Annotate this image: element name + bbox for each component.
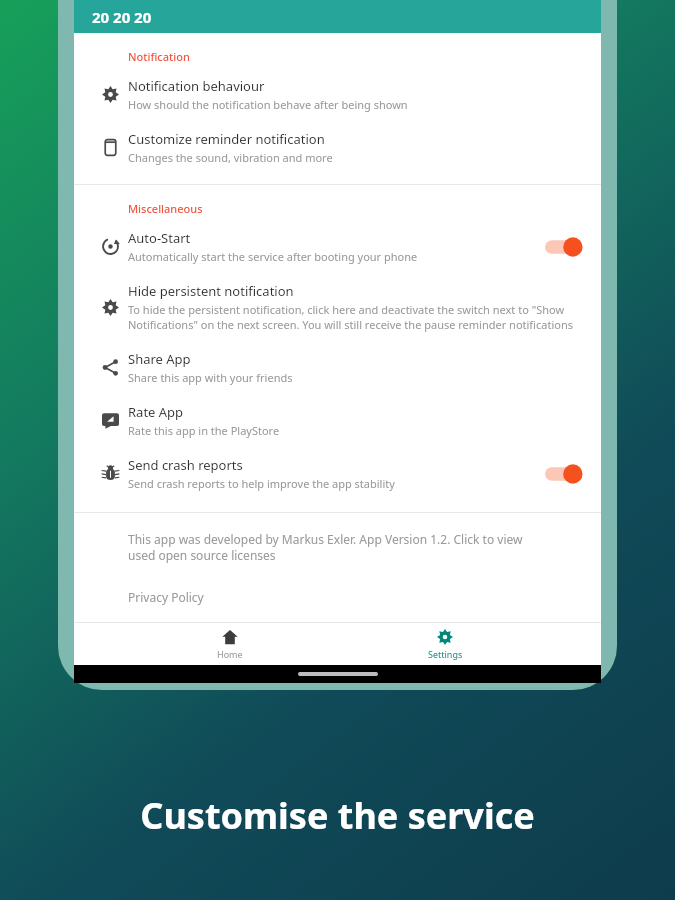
staticText: Auto-Start xyxy=(128,229,191,247)
button[interactable]: Toggle xyxy=(543,236,583,258)
staticText: Miscellaneous xyxy=(128,201,203,216)
button[interactable]: Auto start xyxy=(74,220,601,273)
button[interactable]: Toggle xyxy=(543,463,583,485)
button[interactable]: Share xyxy=(74,341,601,394)
button[interactable]: Settings xyxy=(74,68,601,121)
button[interactable]: Device xyxy=(74,121,601,174)
staticText: Changes the sound, vibration and more xyxy=(128,150,333,165)
staticText: Customize reminder notification xyxy=(128,130,325,148)
other: Share xyxy=(102,359,119,376)
staticText: Hide persistent notification xyxy=(128,282,294,300)
staticText: How should the notification behave after… xyxy=(128,97,408,112)
button[interactable]: Home xyxy=(170,626,290,663)
button[interactable]: Rate xyxy=(74,394,601,447)
button[interactable]: Privacy Policy xyxy=(74,585,601,609)
other: Crash reports xyxy=(102,465,119,482)
button[interactable]: Settings xyxy=(385,626,505,663)
button[interactable]: Crash reports xyxy=(74,447,601,500)
other: Settings xyxy=(102,299,119,316)
staticText: Automatically start the service after bo… xyxy=(128,249,418,264)
staticText: To hide the persistent notification, cli… xyxy=(128,302,575,332)
staticText: Notification behaviour xyxy=(128,77,265,95)
other: Auto start xyxy=(102,238,119,255)
staticText: Send crash reports xyxy=(128,456,243,474)
other: Rate xyxy=(102,412,119,429)
staticText: Home xyxy=(217,648,243,660)
other: Device xyxy=(102,139,119,156)
staticText: Privacy Policy xyxy=(128,589,204,605)
other: Settings xyxy=(102,86,119,103)
staticText: This app was developed by Markus Exler. … xyxy=(128,531,547,563)
button[interactable]: Settings xyxy=(74,273,601,341)
staticText: Rate this app in the PlayStore xyxy=(128,423,280,438)
other: Settings xyxy=(437,629,453,645)
staticText: Share this app with your friends xyxy=(128,370,293,385)
staticText: Rate App xyxy=(128,403,184,421)
staticText: Send crash reports to help improve the a… xyxy=(128,476,395,491)
staticText: Share App xyxy=(128,350,191,368)
staticText: 20 20 20 xyxy=(92,7,152,27)
staticText: Notification xyxy=(128,49,190,64)
button[interactable]: This app was developed by Markus Exler. … xyxy=(74,527,601,567)
staticText: Customise the service xyxy=(140,791,535,840)
other: Home xyxy=(222,629,238,645)
staticText: Settings xyxy=(428,648,463,660)
